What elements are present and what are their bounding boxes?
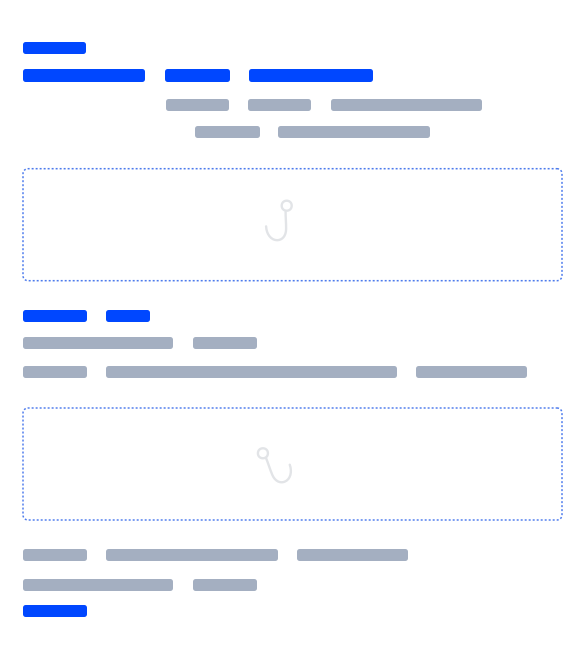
button[interactable]: Drop zone bbox=[23, 408, 562, 521]
button[interactable]: Drop zone bbox=[23, 168, 562, 281]
